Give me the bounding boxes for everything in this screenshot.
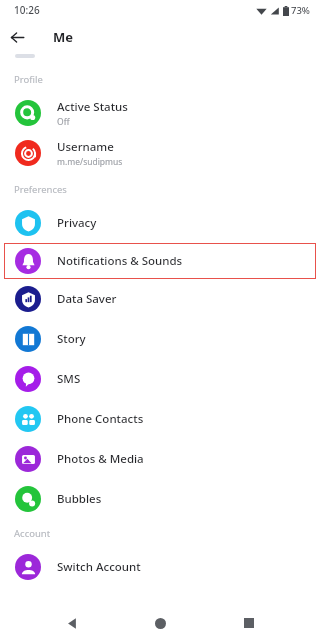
staticText: Privacy <box>57 215 97 231</box>
button[interactable]: Phone Contacts <box>0 399 320 439</box>
staticText: Username <box>57 139 114 155</box>
button[interactable]: Home <box>143 606 177 640</box>
button[interactable]: Username <box>0 133 320 173</box>
staticText: Me <box>53 28 74 46</box>
staticText: Phone Contacts <box>57 411 144 427</box>
staticText: Off <box>57 116 70 128</box>
staticText: m.me/sudipmus <box>57 156 123 168</box>
button[interactable]: Photos & Media <box>0 439 320 479</box>
button[interactable]: Navigate up <box>0 20 34 54</box>
button[interactable]: Recent apps <box>232 606 266 640</box>
staticText: Account <box>14 527 51 540</box>
button[interactable]: Bubbles <box>0 479 320 519</box>
button[interactable]: Privacy <box>0 203 320 243</box>
staticText: Active Status <box>57 99 128 115</box>
button[interactable]: Story <box>0 319 320 359</box>
button[interactable]: Notifications & Sounds <box>4 243 316 279</box>
staticText: Preferences <box>14 183 67 196</box>
button[interactable]: Data Saver <box>0 279 320 319</box>
staticText: Bubbles <box>57 491 102 507</box>
staticText: 10:26 <box>14 3 40 17</box>
button[interactable]: Active Status <box>0 93 320 133</box>
button[interactable]: Switch Account <box>0 547 320 587</box>
staticText: Switch Account <box>57 559 141 575</box>
staticText: Notifications & Sounds <box>57 253 183 269</box>
button[interactable]: SMS <box>0 359 320 399</box>
button[interactable]: Back <box>55 606 89 640</box>
staticText: Profile <box>14 73 43 86</box>
staticText: SMS <box>57 371 81 387</box>
staticText: Photos & Media <box>57 451 144 467</box>
staticText: Data Saver <box>57 291 117 307</box>
staticText: 73% <box>291 4 310 17</box>
staticText: Story <box>57 331 86 347</box>
